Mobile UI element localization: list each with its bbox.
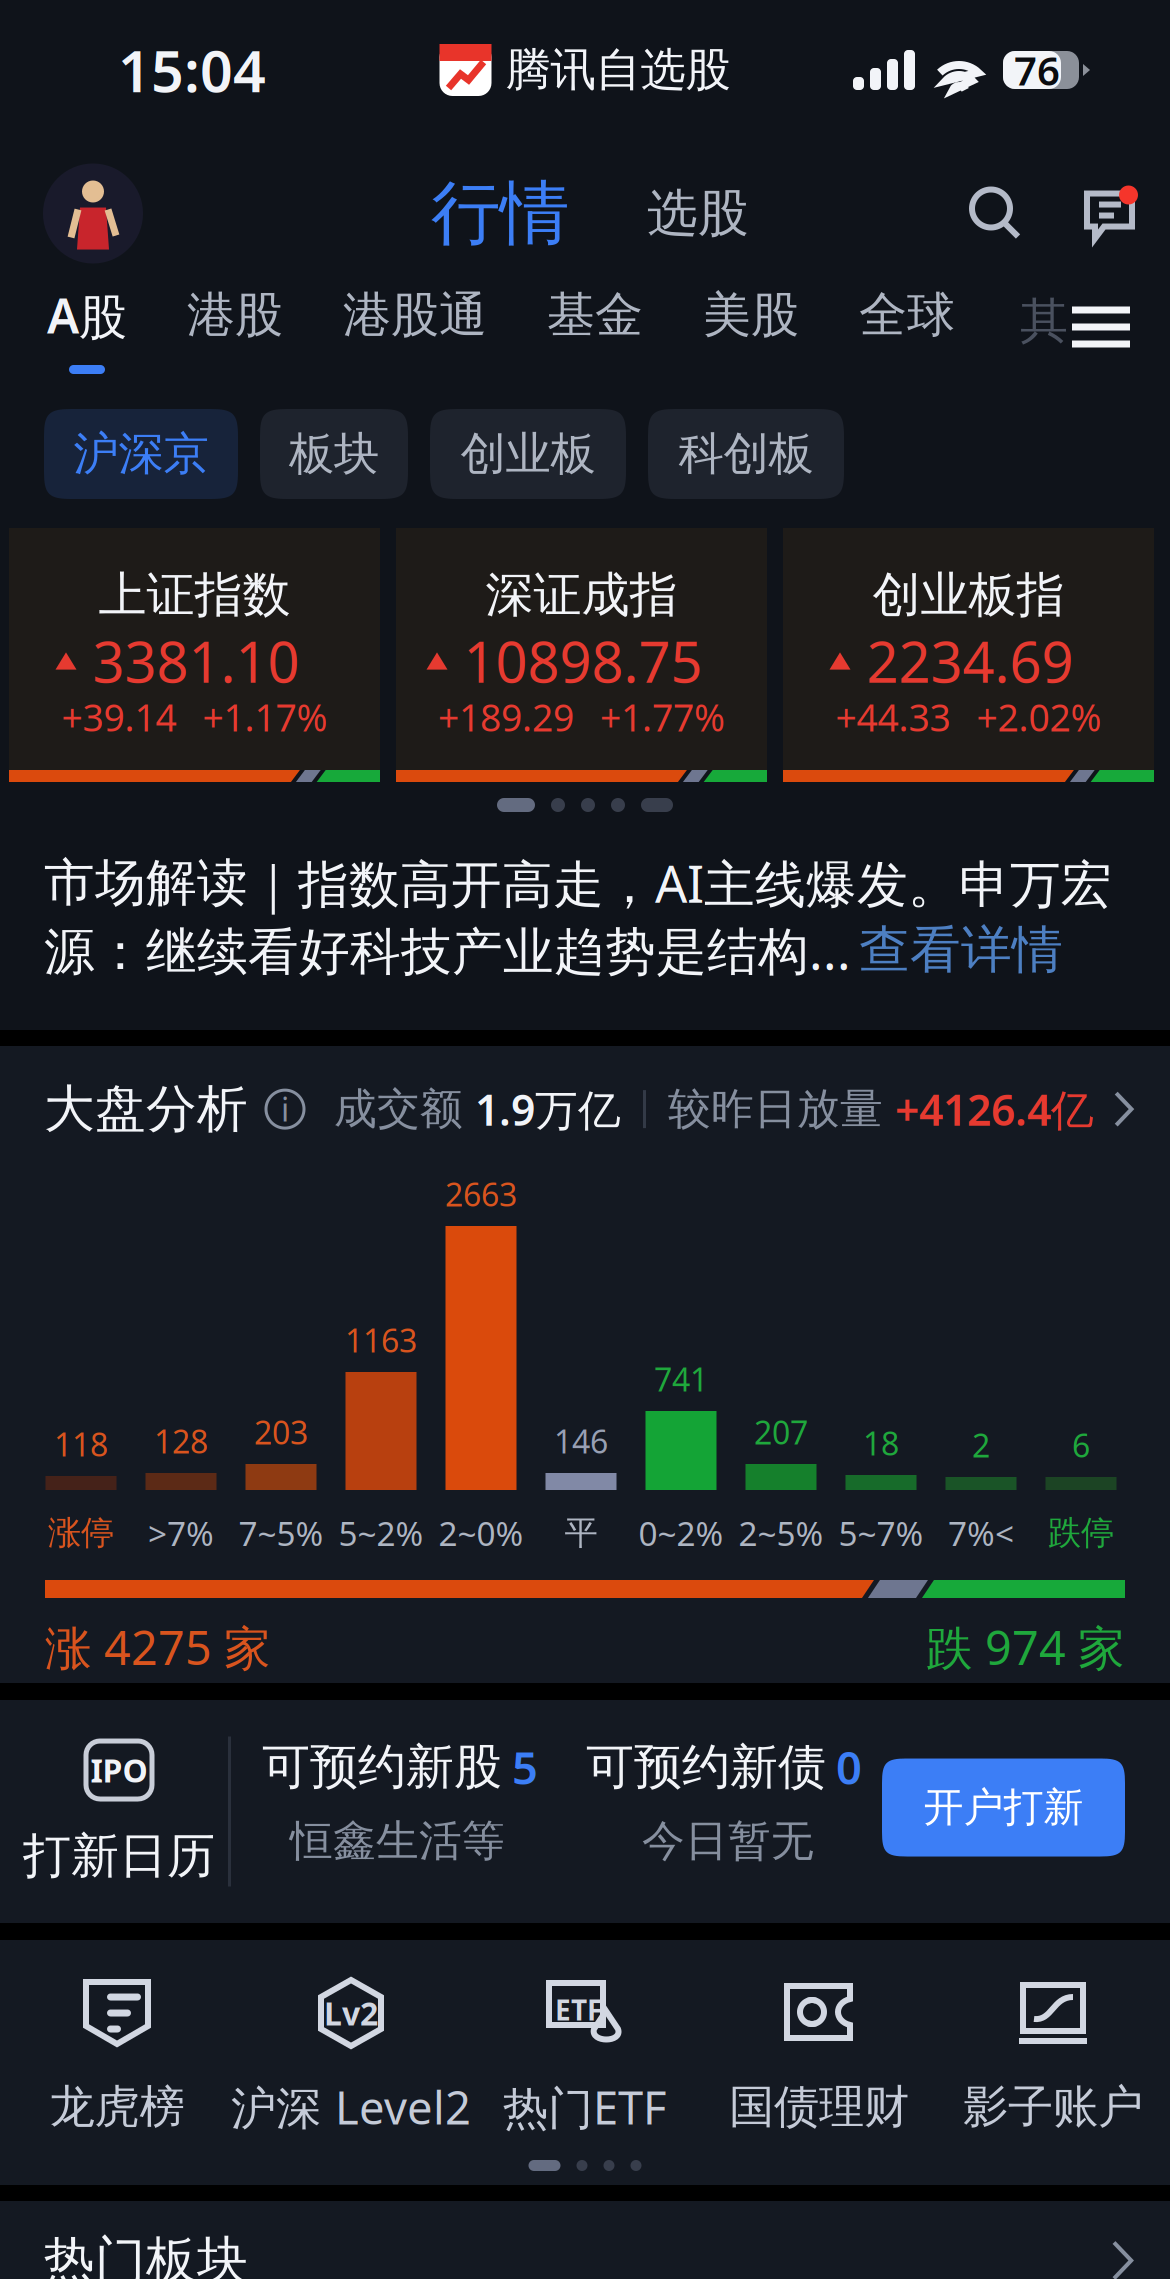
button[interactable]: Messages <box>1082 185 1144 241</box>
staticText: 热门ETF <box>503 2077 667 2137</box>
staticText: 涨 4275 家 <box>45 1616 271 1678</box>
button[interactable]: Lv2 <box>234 1974 468 2132</box>
button[interactable]: 创业板指 <box>783 528 1154 782</box>
staticText: 15:04 <box>118 32 266 108</box>
staticText: 5~7% <box>838 1511 923 1555</box>
staticText: 创业板 <box>460 426 595 482</box>
staticText: 恒鑫生活等 <box>290 1815 505 1867</box>
button[interactable]: 创业板 <box>430 409 626 499</box>
button[interactable]: 港股通 <box>313 287 517 385</box>
button[interactable]: 基金 <box>517 287 673 385</box>
staticText: A股 <box>47 283 127 347</box>
button[interactable]: 行情 <box>431 163 569 263</box>
button[interactable]: 港股 <box>157 287 313 385</box>
staticText: 热门板块 <box>44 2229 248 2279</box>
button[interactable]: IPO <box>10 1699 228 1924</box>
staticText: 行情 <box>431 171 569 256</box>
staticText: 龙虎榜 <box>49 2079 184 2135</box>
button[interactable]: 沪深京 <box>44 409 238 499</box>
button[interactable]: 市场解读 <box>0 839 1170 1030</box>
staticText: 3381.10 <box>92 624 299 698</box>
staticText: 0~2% <box>638 1511 723 1555</box>
staticText: 146 <box>554 1420 608 1462</box>
staticText: 选股 <box>647 182 749 245</box>
staticText: 港股通 <box>343 285 487 344</box>
staticText: 741 <box>654 1358 708 1400</box>
staticText: 沪深京 <box>73 426 208 482</box>
button[interactable]: 美股 <box>673 287 829 385</box>
staticText: ETF <box>555 1991 602 2028</box>
staticText: 科创板 <box>678 426 813 482</box>
staticText: 腾讯自选股 <box>505 42 730 98</box>
button[interactable]: 板块 <box>260 409 408 499</box>
staticText: +4126.4亿 <box>895 1081 1094 1137</box>
button[interactable]: A股 <box>17 287 157 385</box>
staticText: 7~5% <box>238 1511 323 1555</box>
button[interactable]: Search <box>966 185 1022 241</box>
button[interactable]: 大盘分析 <box>0 1046 1170 1150</box>
button[interactable]: More markets <box>1072 305 1130 345</box>
staticText: 港股 <box>187 285 283 344</box>
staticText: 查看详情 <box>859 919 1063 981</box>
staticText: 2 <box>972 1424 990 1466</box>
staticText: 2234.69 <box>866 624 1073 698</box>
staticText: 国债理财 <box>729 2079 909 2135</box>
staticText: +44.33 <box>835 692 950 742</box>
staticText: 0 <box>836 1737 862 1797</box>
staticText: +1.17% <box>202 692 327 742</box>
staticText: 2~5% <box>738 1511 823 1555</box>
staticText: 平 <box>564 1512 597 1553</box>
staticText: 可预约新股 <box>262 1737 502 1796</box>
button[interactable]: 影子账户 <box>936 1974 1170 2132</box>
button[interactable]: 热门板块 <box>0 2201 1170 2279</box>
staticText: 203 <box>254 1411 308 1453</box>
staticText: +189.29 <box>438 692 574 742</box>
staticText: 1.9万亿 <box>475 1081 621 1137</box>
staticText: 深证成指 <box>485 565 677 624</box>
button[interactable]: 科创板 <box>648 409 844 499</box>
staticText: 源：继续看好科技产业趋势是结构... <box>44 916 851 984</box>
staticText: +39.14 <box>61 692 176 742</box>
staticText: 128 <box>154 1420 208 1462</box>
staticText: 其 <box>1020 291 1068 350</box>
button[interactable]: 上证指数 <box>9 528 380 782</box>
staticText: 1163 <box>345 1319 417 1361</box>
staticText: 大盘分析 <box>44 1078 248 1140</box>
button[interactable]: 深证成指 <box>396 528 767 782</box>
staticText: 影子账户 <box>963 2079 1143 2135</box>
button[interactable]: 龙虎榜 <box>0 1974 234 2132</box>
staticText: 全球 <box>859 285 955 344</box>
button[interactable]: 国债理财 <box>702 1974 936 2132</box>
staticText: IPO <box>90 1749 147 1791</box>
staticText: 基金 <box>547 285 643 344</box>
button[interactable]: 选股 <box>647 163 749 263</box>
button[interactable]: 全球 <box>829 287 985 385</box>
staticText: 可预约新债 <box>586 1737 826 1796</box>
staticText: 2~0% <box>438 1511 523 1555</box>
staticText: 沪深 Level2 <box>231 2077 471 2137</box>
button[interactable]: 可预约新股 <box>262 1699 552 1924</box>
button[interactable]: Profile <box>43 163 143 263</box>
staticText: 6 <box>1072 1424 1090 1466</box>
staticText: 7%< <box>948 1511 1014 1555</box>
button[interactable]: ETF <box>468 1974 702 2132</box>
staticText: Lv2 <box>324 1992 378 2034</box>
staticText: 118 <box>54 1423 108 1465</box>
staticText: 今日暂无 <box>642 1815 814 1867</box>
staticText: 跌停 <box>1048 1512 1114 1553</box>
staticText: 涨停 <box>48 1512 114 1553</box>
button[interactable]: 开户打新 <box>882 1758 1125 1856</box>
staticText: 上证指数 <box>98 565 290 624</box>
staticText: i <box>281 1088 289 1130</box>
staticText: 5~2% <box>338 1511 423 1555</box>
staticText: 创业板指 <box>872 565 1064 624</box>
staticText: 成交额 <box>334 1083 463 1135</box>
staticText: >7% <box>148 1511 214 1555</box>
button[interactable]: 可预约新债 <box>586 1699 872 1924</box>
staticText: 76 <box>1014 43 1060 96</box>
staticText: 打新日历 <box>23 1826 215 1885</box>
staticText: 2663 <box>445 1173 517 1215</box>
staticText: 板块 <box>289 426 379 482</box>
staticText: 市场解读 <box>44 852 248 914</box>
staticText: 较昨日放量 <box>668 1083 883 1135</box>
